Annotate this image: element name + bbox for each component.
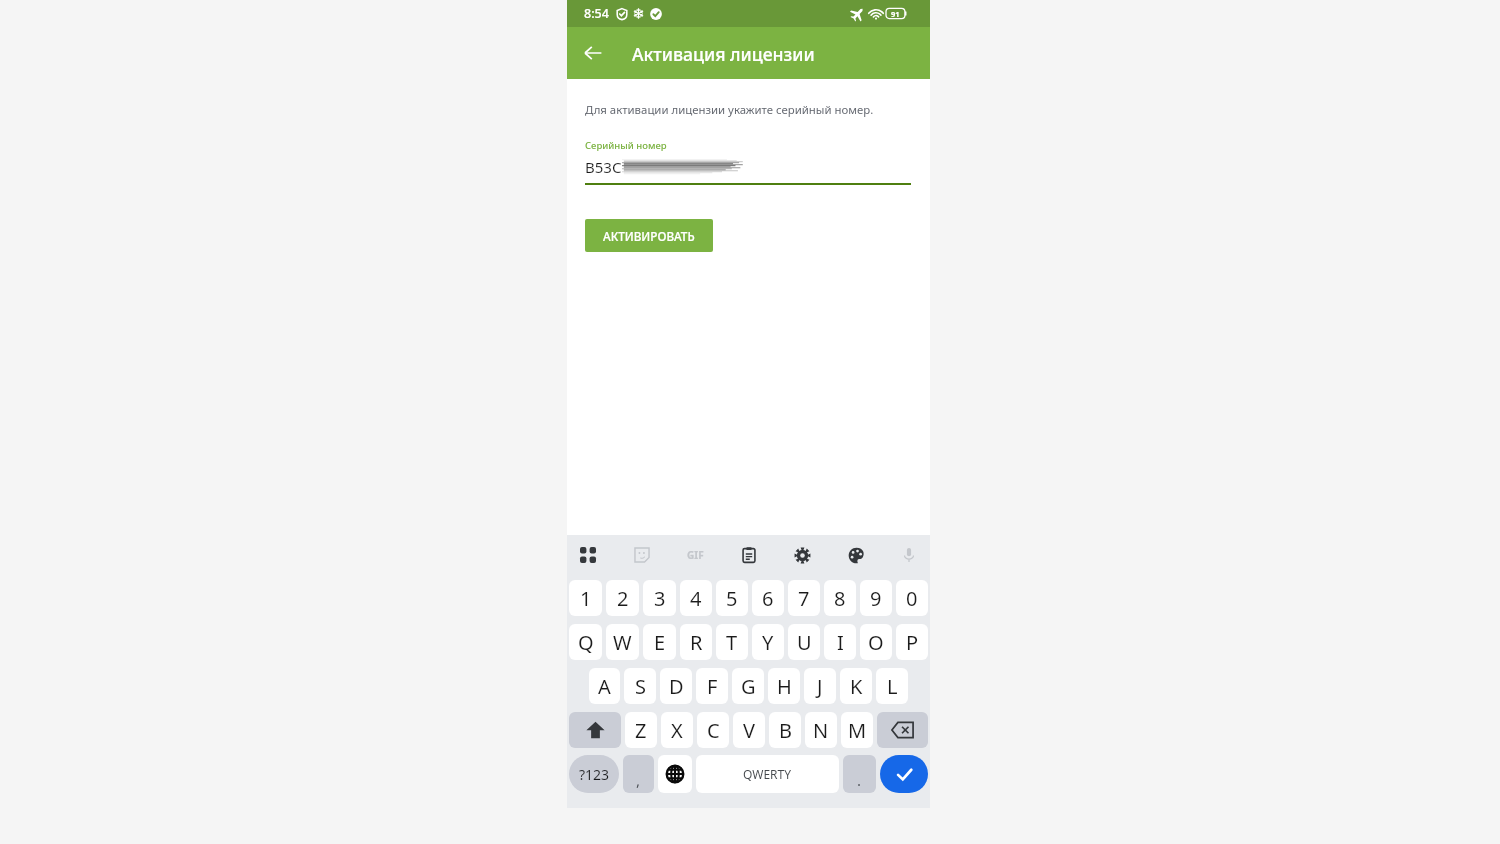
button[interactable]: 0: [896, 580, 928, 616]
staticText: ,: [636, 770, 641, 790]
button[interactable]: F: [696, 668, 728, 704]
staticText: Серийный номер: [585, 139, 667, 152]
button[interactable]: 5: [716, 580, 748, 616]
staticText: 91: [891, 9, 900, 19]
button[interactable]: J: [804, 668, 836, 704]
button[interactable]: Backspace: [877, 712, 928, 748]
staticText: K: [850, 673, 863, 700]
staticText: C: [707, 717, 720, 744]
staticText: H: [777, 673, 792, 700]
button[interactable]: Shift: [569, 712, 621, 748]
staticText: P: [906, 629, 919, 656]
button[interactable]: 1: [569, 580, 602, 616]
button[interactable]: 2: [606, 580, 639, 616]
button[interactable]: 3: [643, 580, 676, 616]
button[interactable]: U: [788, 624, 820, 660]
staticText: 4: [690, 585, 702, 612]
staticText: U: [797, 629, 812, 656]
staticText: T: [726, 629, 738, 656]
staticText: АКТИВИРОВАТЬ: [603, 228, 695, 244]
staticText: V: [743, 717, 755, 744]
staticText: 9: [870, 585, 882, 612]
staticText: M: [848, 717, 867, 744]
button[interactable]: 7: [788, 580, 820, 616]
staticText: 7: [798, 585, 810, 612]
button[interactable]: L: [876, 668, 908, 704]
button[interactable]: Q: [569, 624, 602, 660]
staticText: R: [690, 629, 703, 656]
button[interactable]: G: [732, 668, 764, 704]
button[interactable]: Stickers: [622, 535, 662, 575]
button[interactable]: Period: [843, 755, 876, 793]
staticText: 8:54: [584, 5, 609, 22]
button[interactable]: S: [624, 668, 656, 704]
button[interactable]: 9: [860, 580, 892, 616]
button[interactable]: Z: [625, 712, 657, 748]
staticText: Для активации лицензии укажите серийный …: [585, 102, 874, 118]
staticText: Активация лицензии: [632, 42, 815, 66]
staticText: D: [669, 673, 684, 700]
staticText: J: [817, 673, 823, 700]
staticText: 0: [906, 585, 918, 612]
staticText: W: [613, 629, 632, 656]
button[interactable]: C: [697, 712, 729, 748]
staticText: B53C: [585, 157, 622, 177]
button[interactable]: Enter: [880, 755, 928, 793]
staticText: E: [654, 629, 666, 656]
button[interactable]: 8: [824, 580, 856, 616]
staticText: Y: [762, 629, 774, 656]
staticText: A: [598, 673, 611, 700]
button[interactable]: Change language: [658, 755, 692, 793]
button[interactable]: I: [824, 624, 856, 660]
button[interactable]: ?123: [569, 755, 619, 793]
button[interactable]: H: [768, 668, 800, 704]
staticText: ?123: [579, 765, 610, 784]
staticText: I: [837, 629, 844, 656]
staticText: B: [779, 717, 792, 744]
button[interactable]: АКТИВИРОВАТЬ: [585, 219, 713, 252]
staticText: GIF: [687, 548, 704, 562]
button[interactable]: M: [841, 712, 873, 748]
staticText: 8: [834, 585, 846, 612]
button[interactable]: 6: [752, 580, 784, 616]
staticText: N: [813, 717, 829, 744]
button[interactable]: GIF: [675, 535, 715, 575]
button[interactable]: 4: [680, 580, 712, 616]
button[interactable]: Settings: [782, 535, 822, 575]
staticText: O: [868, 629, 884, 656]
staticText: F: [707, 673, 718, 700]
button[interactable]: N: [805, 712, 837, 748]
staticText: 1: [580, 585, 592, 612]
staticText: S: [635, 673, 646, 700]
button[interactable]: P: [896, 624, 928, 660]
staticText: G: [741, 673, 756, 700]
staticText: 3: [654, 585, 666, 612]
button[interactable]: Y: [752, 624, 784, 660]
staticText: 2: [617, 585, 629, 612]
staticText: Z: [635, 717, 647, 744]
button[interactable]: D: [660, 668, 692, 704]
staticText: Q: [578, 629, 594, 656]
staticText: .: [857, 770, 862, 790]
button[interactable]: W: [606, 624, 639, 660]
button[interactable]: Theme: [836, 535, 876, 575]
staticText: QWERTY: [743, 766, 792, 782]
button[interactable]: A: [589, 668, 620, 704]
button[interactable]: Clipboard: [729, 535, 769, 575]
staticText: L: [887, 673, 898, 700]
button[interactable]: B: [769, 712, 801, 748]
staticText: X: [671, 717, 683, 744]
button[interactable]: Apps: [568, 535, 608, 575]
button[interactable]: O: [860, 624, 892, 660]
button[interactable]: R: [680, 624, 712, 660]
button[interactable]: Back: [577, 37, 609, 69]
button[interactable]: K: [840, 668, 872, 704]
button[interactable]: E: [643, 624, 676, 660]
staticText: 5: [726, 585, 738, 612]
button[interactable]: Voice input: [889, 535, 929, 575]
button[interactable]: QWERTY: [696, 755, 839, 793]
button[interactable]: T: [716, 624, 748, 660]
button[interactable]: Comma: [623, 755, 654, 793]
button[interactable]: X: [661, 712, 693, 748]
button[interactable]: V: [733, 712, 765, 748]
